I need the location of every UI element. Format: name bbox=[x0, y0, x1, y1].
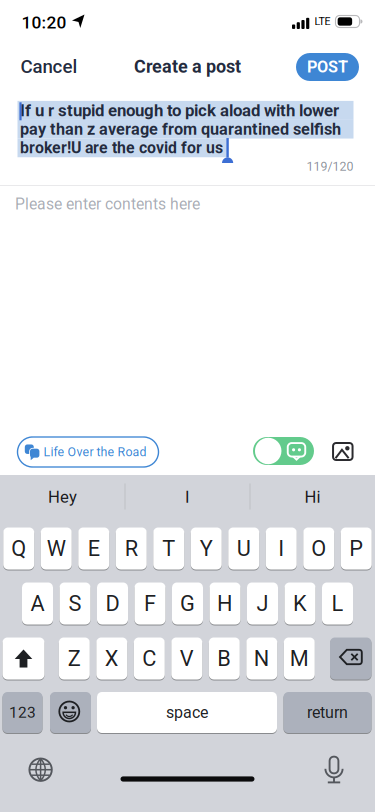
button[interactable]: Hi bbox=[257, 480, 367, 514]
staticText: Hi bbox=[304, 487, 320, 507]
staticText: Q bbox=[11, 536, 26, 561]
staticText: V bbox=[180, 646, 194, 671]
staticText: Life Over the Road bbox=[43, 445, 146, 459]
button[interactable]: E bbox=[78, 527, 109, 570]
button[interactable]: Emoji bbox=[50, 691, 91, 733]
staticText: O bbox=[311, 536, 326, 561]
staticText: Z bbox=[68, 646, 81, 671]
staticText: POST bbox=[307, 57, 348, 77]
staticText: 10:20 bbox=[21, 12, 66, 33]
staticText: N bbox=[254, 646, 270, 671]
button[interactable]: L bbox=[322, 582, 353, 625]
button[interactable]: D bbox=[97, 582, 128, 625]
button[interactable]: C bbox=[134, 637, 165, 680]
button[interactable]: R bbox=[116, 527, 147, 570]
staticText: L bbox=[331, 591, 343, 616]
button[interactable]: W bbox=[41, 527, 72, 570]
button[interactable]: Q bbox=[3, 527, 34, 570]
staticText: E bbox=[88, 536, 100, 561]
staticText: Create a post bbox=[134, 56, 241, 77]
staticText: K bbox=[293, 591, 307, 616]
staticText: W bbox=[47, 536, 66, 561]
staticText: J bbox=[256, 591, 268, 616]
staticText: U bbox=[237, 536, 251, 561]
button[interactable]: O bbox=[303, 527, 334, 570]
button[interactable]: H bbox=[209, 582, 240, 625]
button[interactable]: return bbox=[283, 691, 371, 733]
staticText: B bbox=[217, 646, 231, 671]
staticText: pay than z average from quarantined self… bbox=[20, 120, 341, 139]
staticText: H bbox=[217, 591, 233, 616]
button[interactable]: P bbox=[341, 527, 372, 570]
button[interactable]: I bbox=[132, 480, 242, 514]
button[interactable]: J bbox=[247, 582, 278, 625]
button[interactable]: Dictation bbox=[312, 748, 356, 790]
button[interactable]: X bbox=[96, 637, 127, 680]
button[interactable]: M bbox=[284, 637, 315, 680]
staticText: D bbox=[105, 591, 119, 616]
staticText: 123 bbox=[9, 703, 36, 721]
button[interactable]: U bbox=[228, 527, 259, 570]
button[interactable]: Cancel bbox=[20, 56, 77, 77]
staticText: space bbox=[166, 703, 208, 722]
button[interactable]: V bbox=[171, 637, 202, 680]
staticText: 119/120 bbox=[306, 159, 353, 174]
button[interactable]: Next keyboard bbox=[18, 748, 62, 790]
staticText: Cancel bbox=[20, 56, 77, 77]
staticText: I bbox=[185, 487, 190, 507]
staticText: T bbox=[162, 536, 175, 561]
staticText: C bbox=[142, 646, 156, 671]
staticText: I bbox=[278, 536, 284, 561]
staticText: If u r stupid enough to pick aload with … bbox=[20, 101, 339, 120]
staticText: A bbox=[30, 591, 44, 616]
staticText: broker!U are the covid for us bbox=[20, 139, 223, 157]
button[interactable]: N bbox=[246, 637, 277, 680]
button[interactable]: Y bbox=[191, 527, 222, 570]
staticText: LTE bbox=[314, 15, 330, 28]
button[interactable]: G bbox=[172, 582, 203, 625]
button[interactable]: space bbox=[97, 691, 277, 733]
button[interactable]: Hey bbox=[7, 480, 117, 514]
staticText: Y bbox=[200, 536, 213, 561]
staticText: S bbox=[68, 591, 81, 616]
staticText: Please enter contents here bbox=[15, 195, 200, 213]
staticText: P bbox=[349, 536, 363, 561]
staticText: Hey bbox=[48, 487, 77, 507]
button[interactable]: Add photo bbox=[333, 443, 353, 460]
button[interactable]: Delete bbox=[330, 637, 371, 680]
staticText: R bbox=[125, 536, 138, 561]
button[interactable]: B bbox=[209, 637, 240, 680]
button[interactable]: POST bbox=[296, 53, 359, 81]
staticText: G bbox=[180, 591, 195, 616]
button[interactable]: Z bbox=[59, 637, 90, 680]
button[interactable]: I bbox=[266, 527, 297, 570]
button[interactable]: F bbox=[134, 582, 165, 625]
button[interactable]: S bbox=[59, 582, 90, 625]
button[interactable]: 123 bbox=[2, 691, 42, 733]
button[interactable]: Shift bbox=[2, 637, 44, 680]
staticText: M bbox=[290, 646, 309, 671]
button[interactable]: Life Over the Road bbox=[17, 437, 158, 467]
staticText: X bbox=[105, 646, 119, 671]
button[interactable]: T bbox=[153, 527, 184, 570]
button[interactable]: A bbox=[22, 582, 53, 625]
button[interactable]: Toggle comments bbox=[253, 437, 314, 465]
staticText: F bbox=[144, 591, 156, 616]
button[interactable]: K bbox=[284, 582, 315, 625]
staticText: return bbox=[307, 703, 348, 722]
